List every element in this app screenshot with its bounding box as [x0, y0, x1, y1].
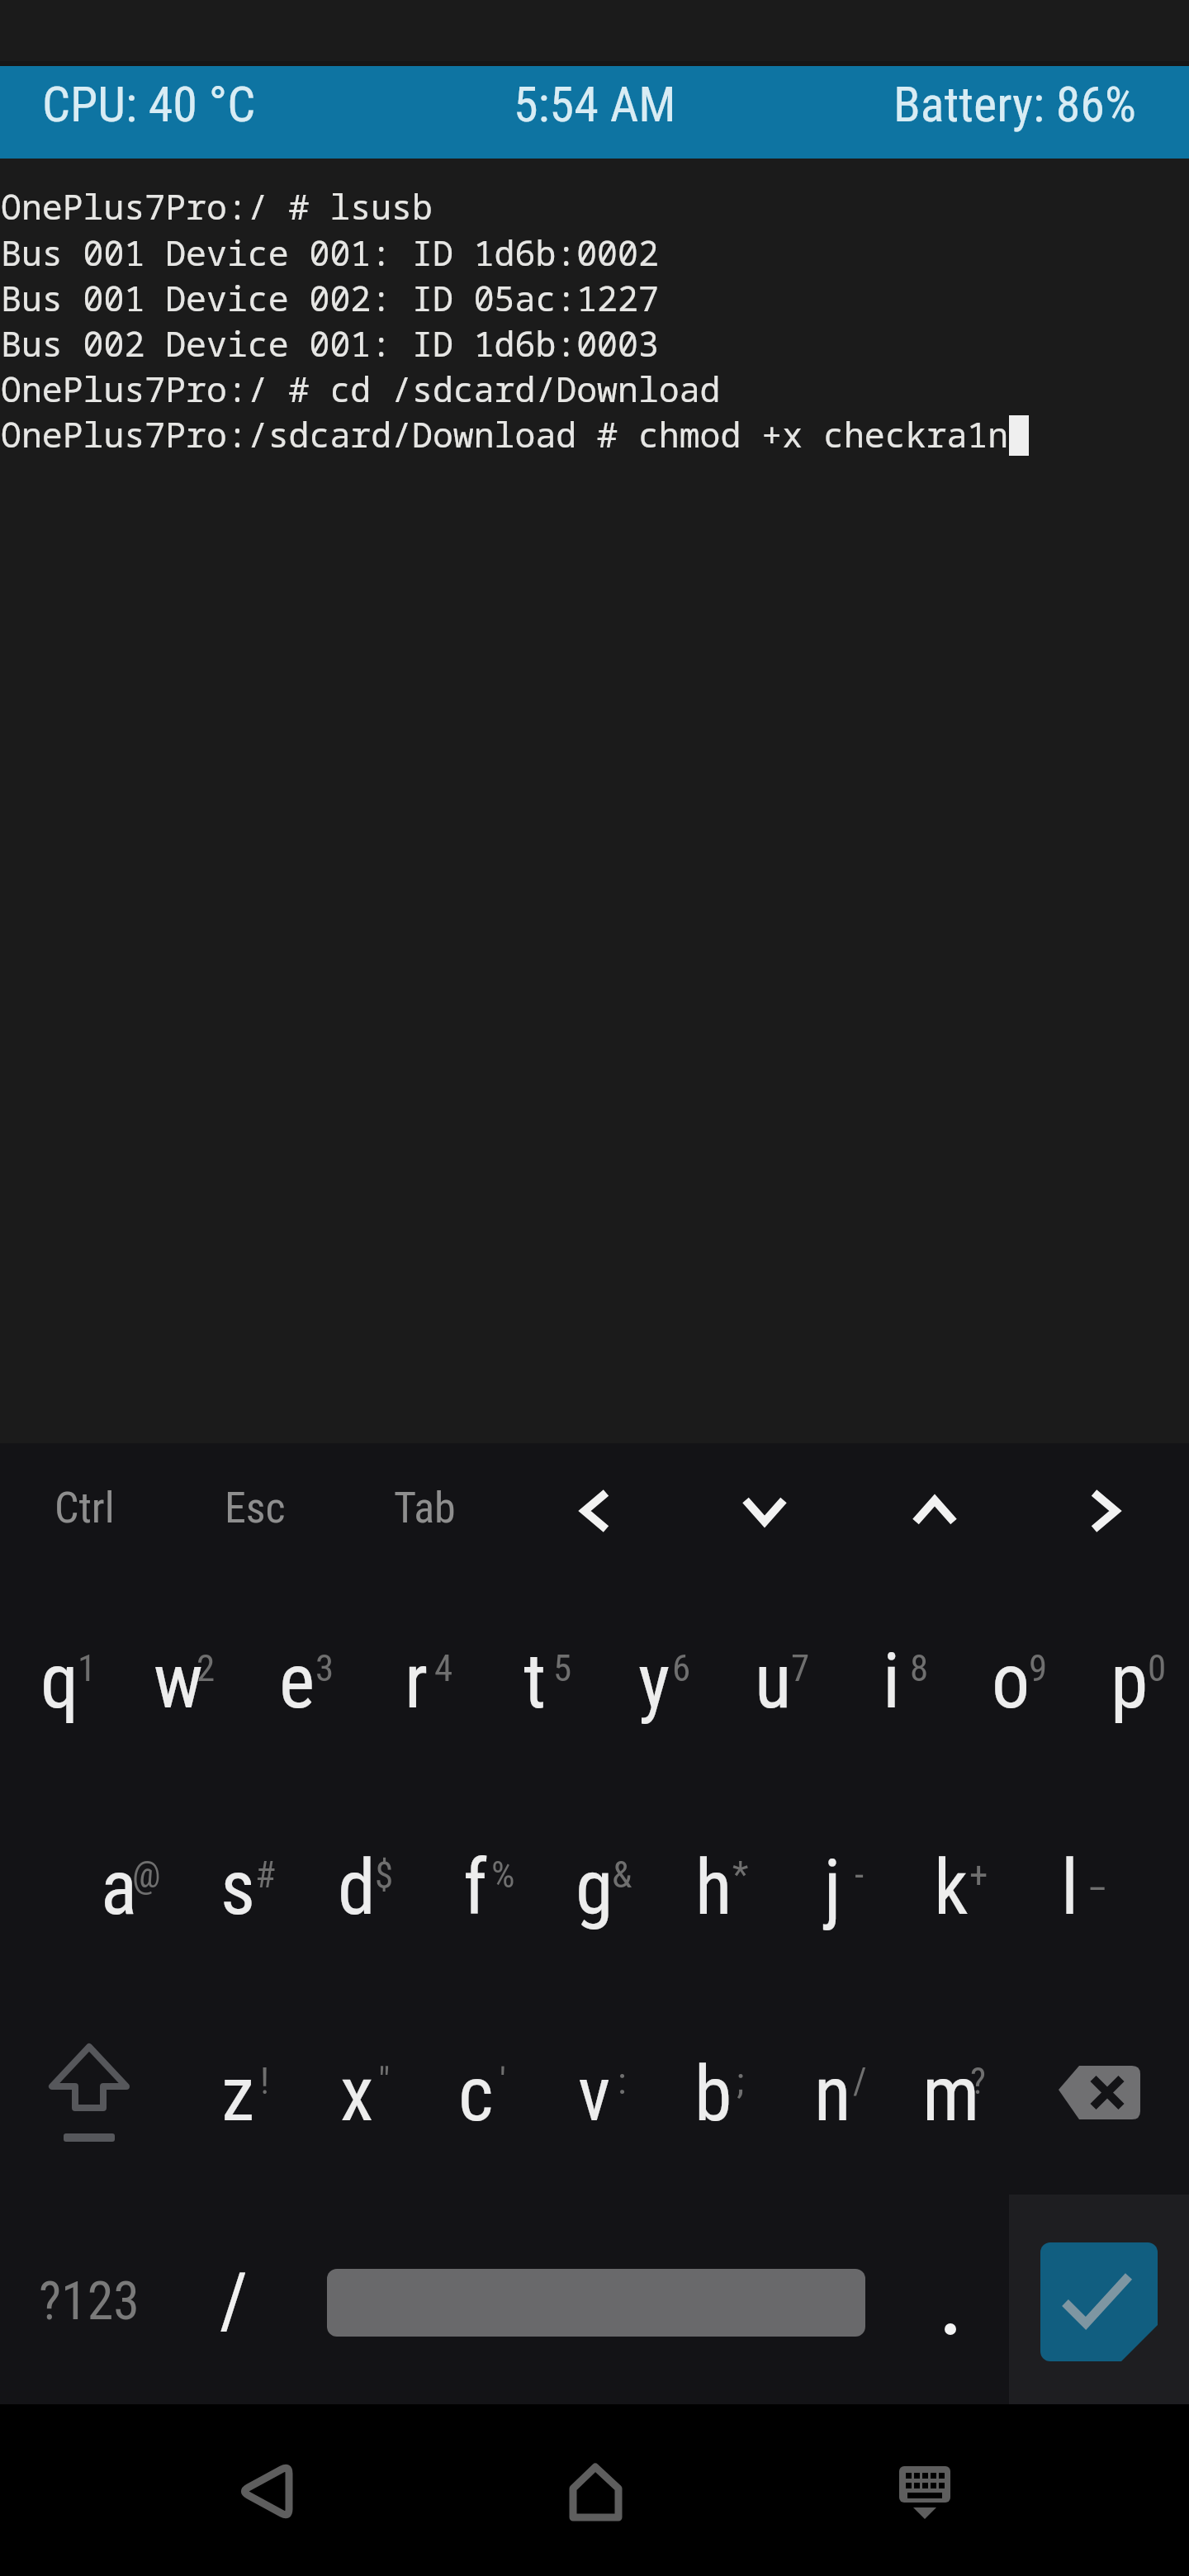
button[interactable] [875, 2441, 974, 2540]
staticText: 5:54 AM [514, 75, 676, 133]
staticText: & [612, 1853, 632, 1896]
button[interactable]: u [713, 1579, 832, 1785]
button[interactable] [0, 1991, 178, 2198]
button[interactable] [1009, 2198, 1189, 2404]
staticText: : [618, 2059, 627, 2103]
staticText: h [695, 1844, 732, 1933]
button[interactable] [680, 1443, 849, 1579]
staticText: / [220, 2256, 249, 2346]
button[interactable]: r [357, 1579, 476, 1785]
staticText: - [855, 1853, 865, 1896]
button[interactable]: ?123 [0, 2198, 178, 2404]
staticText: 2 [197, 1646, 216, 1690]
button[interactable]: s [178, 1785, 297, 1991]
button[interactable] [1020, 1443, 1189, 1579]
button[interactable]: d [297, 1785, 416, 1991]
staticText: ? [970, 2059, 987, 2103]
staticText: ' [500, 2059, 506, 2103]
staticText: Battery: 86% [893, 75, 1136, 133]
staticText: 9 [1029, 1646, 1048, 1690]
button[interactable]: l [1011, 1785, 1130, 1991]
button[interactable] [850, 1443, 1019, 1579]
staticText: _ [1090, 1853, 1106, 1896]
button[interactable]: v [535, 1991, 654, 2198]
staticText: 6 [672, 1646, 691, 1690]
staticText: 3 [315, 1646, 334, 1690]
button[interactable]: Tab [340, 1443, 509, 1579]
staticText: f [463, 1844, 488, 1933]
button[interactable]: CPU: 40 °C [0, 66, 1189, 159]
staticText: o [992, 1637, 1030, 1726]
button[interactable]: x [297, 1991, 416, 2198]
staticText: d [338, 1844, 376, 1933]
staticText: z [221, 2050, 255, 2139]
staticText: q [40, 1637, 79, 1726]
staticText: n [814, 2050, 851, 2139]
button[interactable]: h [654, 1785, 773, 1991]
staticText: ; [737, 2059, 745, 2103]
staticText: CPU: 40 °C [42, 75, 256, 133]
button[interactable]: c [416, 1991, 535, 2198]
staticText: g [576, 1844, 613, 1933]
button[interactable]: f [416, 1785, 535, 1991]
staticText: j [824, 1844, 841, 1933]
button[interactable] [945, 2323, 956, 2335]
staticText: 7 [791, 1646, 810, 1690]
staticText: " [378, 2059, 391, 2103]
staticText: w [154, 1637, 203, 1726]
button[interactable]: i [832, 1579, 951, 1785]
staticText: 4 [434, 1646, 453, 1690]
button[interactable]: b [654, 1991, 773, 2198]
staticText: OnePlus7Pro:/ # lsusb Bus 001 Device 001… [1, 183, 1009, 457]
staticText: t [523, 1637, 547, 1726]
button[interactable]: k [892, 1785, 1011, 1991]
staticText: e [279, 1637, 315, 1726]
staticText: Esc [225, 1483, 286, 1533]
staticText: a [101, 1844, 138, 1933]
button[interactable]: w [119, 1579, 238, 1785]
button[interactable]: q [0, 1579, 119, 1785]
staticText: Ctrl [54, 1483, 115, 1533]
staticText: ?123 [39, 2271, 140, 2332]
button[interactable] [510, 1443, 680, 1579]
button[interactable] [546, 2441, 645, 2540]
staticText: y [638, 1637, 670, 1726]
staticText: @ [132, 1853, 161, 1896]
staticText: 1 [78, 1646, 97, 1690]
staticText: ! [260, 2059, 270, 2103]
button[interactable]: Ctrl [0, 1443, 169, 1579]
button[interactable]: / [176, 2198, 291, 2404]
button[interactable]: j [773, 1785, 892, 1991]
button[interactable]: z [178, 1991, 297, 2198]
staticText: 0 [1148, 1646, 1167, 1690]
staticText: # [255, 1853, 276, 1896]
staticText: k [934, 1844, 969, 1933]
staticText: * [732, 1853, 749, 1896]
staticText: p [1111, 1637, 1149, 1726]
button[interactable]: a [59, 1785, 178, 1991]
button[interactable] [216, 2441, 315, 2540]
button[interactable]: e [238, 1579, 357, 1785]
staticText: s [220, 1844, 255, 1933]
button[interactable]: o [951, 1579, 1070, 1785]
button[interactable]: t [476, 1579, 594, 1785]
staticText: % [491, 1853, 515, 1896]
staticText: + [969, 1853, 988, 1896]
button[interactable]: m [892, 1991, 1011, 2198]
staticText: v [578, 2050, 611, 2139]
button[interactable]: n [773, 1991, 892, 2198]
button[interactable]: g [535, 1785, 654, 1991]
button[interactable] [1011, 1991, 1189, 2198]
staticText: l [1061, 1844, 1079, 1933]
button[interactable]: y [594, 1579, 713, 1785]
staticText: 8 [910, 1646, 929, 1690]
staticText: 5 [553, 1646, 572, 1690]
staticText: c [458, 2050, 494, 2139]
staticText: u [755, 1637, 792, 1726]
staticText: m [922, 2050, 980, 2139]
button[interactable]: p [1070, 1579, 1189, 1785]
staticText: x [340, 2050, 374, 2139]
button[interactable] [327, 2269, 865, 2337]
staticText: $ [375, 1853, 394, 1896]
button[interactable]: Esc [170, 1443, 339, 1579]
